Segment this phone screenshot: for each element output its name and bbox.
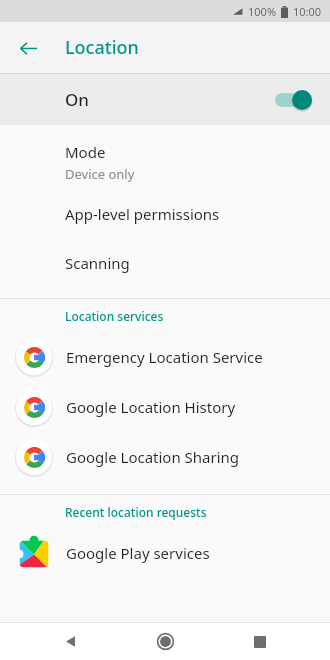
button[interactable]: Google Location History (0, 382, 330, 432)
staticText: Device only (65, 165, 135, 183)
staticText: Google Location Sharing (66, 447, 240, 467)
staticText: Location (65, 35, 139, 60)
staticText: Location services (65, 308, 164, 324)
staticText: 100% (248, 4, 277, 19)
staticText: On (65, 88, 89, 111)
button[interactable]: App-level permissions (0, 189, 330, 238)
button[interactable]: Home (140, 623, 190, 660)
staticText: Google Play services (66, 543, 210, 563)
button[interactable]: Mode (0, 136, 330, 189)
button[interactable]: Back (10, 30, 46, 66)
button[interactable]: Google Play services (0, 528, 330, 578)
button[interactable]: Emergency Location Service (0, 332, 330, 382)
staticText: App-level permissions (65, 204, 220, 224)
button[interactable]: Back (45, 623, 95, 660)
button[interactable]: Recents (235, 623, 285, 660)
staticText: Google Location History (66, 397, 236, 417)
staticText: Recent location requests (65, 504, 207, 520)
staticText: 10:00 (293, 4, 322, 19)
button[interactable]: Scanning (0, 238, 330, 287)
staticText: Mode (65, 142, 106, 162)
staticText: Emergency Location Service (66, 347, 263, 367)
staticText: Scanning (65, 253, 130, 273)
button[interactable]: On (0, 74, 330, 125)
button[interactable]: Google Location Sharing (0, 432, 330, 482)
